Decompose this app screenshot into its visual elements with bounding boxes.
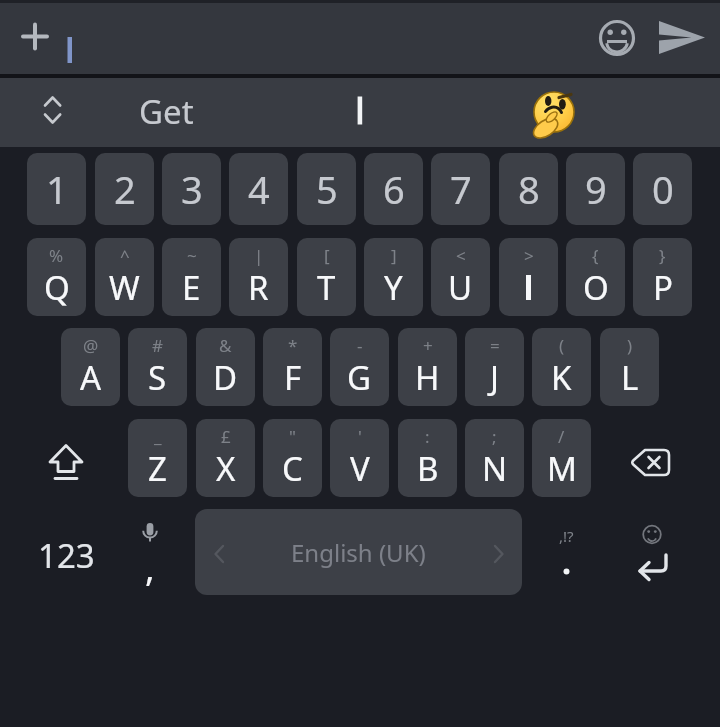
staticText: L xyxy=(621,355,639,400)
button[interactable]: Y xyxy=(364,238,423,316)
button[interactable]: , xyxy=(120,509,180,595)
button[interactable] xyxy=(28,88,78,138)
button[interactable]: G xyxy=(330,328,389,406)
button[interactable]: B xyxy=(398,419,457,497)
button[interactable]: 5 xyxy=(297,153,356,225)
staticText: F xyxy=(284,355,302,400)
button[interactable]: 3 xyxy=(162,153,221,225)
staticText: 3 xyxy=(181,163,203,215)
button[interactable]: Get xyxy=(91,80,241,143)
button[interactable] xyxy=(12,13,58,59)
staticText: O xyxy=(583,265,609,310)
button[interactable]: D xyxy=(196,328,255,406)
staticText: E xyxy=(182,265,201,310)
button[interactable]: W xyxy=(95,238,154,316)
staticText: ; xyxy=(492,425,497,448)
staticText: R xyxy=(248,265,269,310)
staticText: W xyxy=(109,265,140,310)
button[interactable] xyxy=(285,81,435,144)
button[interactable]: A xyxy=(61,328,120,406)
staticText: 1 xyxy=(46,163,68,215)
button[interactable]: 9 xyxy=(566,153,625,225)
staticText: | xyxy=(254,244,264,267)
button[interactable]: J xyxy=(465,328,524,406)
button[interactable]: M xyxy=(532,419,591,497)
button[interactable]: P xyxy=(633,238,692,316)
button[interactable]: ,!? xyxy=(536,509,596,595)
staticText: 2 xyxy=(114,163,136,215)
button[interactable]: 2 xyxy=(95,153,154,225)
button[interactable]: Z xyxy=(128,419,187,497)
staticText: * xyxy=(288,334,298,357)
button[interactable] xyxy=(656,15,708,61)
staticText: J xyxy=(490,355,500,400)
staticText: _ xyxy=(154,425,162,448)
button[interactable]: T xyxy=(297,238,356,316)
staticText: C xyxy=(282,446,303,491)
staticText: 8 xyxy=(518,163,540,215)
button[interactable]: S xyxy=(128,328,187,406)
staticText: ) xyxy=(627,334,633,357)
button[interactable]: L xyxy=(600,328,659,406)
staticText: A xyxy=(80,355,102,400)
staticText: 7 xyxy=(450,163,472,215)
staticText: Q xyxy=(44,265,70,310)
staticText: } xyxy=(659,244,666,267)
button[interactable] xyxy=(622,509,684,595)
button[interactable]: R xyxy=(229,238,288,316)
button[interactable]: V xyxy=(330,419,389,497)
staticText: & xyxy=(219,334,232,357)
button[interactable] xyxy=(594,15,640,61)
staticText: 0 xyxy=(652,163,674,215)
staticText: G xyxy=(347,355,372,400)
button[interactable]: N xyxy=(465,419,524,497)
staticText: @ xyxy=(83,334,99,357)
button[interactable] xyxy=(36,426,96,490)
button[interactable]: U xyxy=(431,238,490,316)
staticText: : xyxy=(425,425,430,448)
button[interactable]: 4 xyxy=(229,153,288,225)
staticText: M xyxy=(547,446,577,491)
button[interactable]: C xyxy=(263,419,322,497)
button[interactable]: F xyxy=(263,328,322,406)
button[interactable]: 6 xyxy=(364,153,423,225)
staticText: N xyxy=(482,446,508,491)
staticText: [ xyxy=(324,244,330,267)
staticText: U xyxy=(448,265,473,310)
button[interactable]: O xyxy=(566,238,625,316)
staticText: £ xyxy=(221,425,231,448)
staticText: Y xyxy=(384,265,403,310)
staticText: V xyxy=(350,446,370,491)
staticText: 5 xyxy=(316,163,338,215)
button[interactable]: 123 xyxy=(31,520,101,590)
staticText: H xyxy=(415,355,440,400)
button[interactable]: > xyxy=(499,238,558,316)
button[interactable] xyxy=(622,426,682,490)
staticText: ^ xyxy=(120,244,130,267)
button[interactable]: 1 xyxy=(27,153,86,225)
staticText: " xyxy=(289,425,296,448)
button[interactable]: 8 xyxy=(499,153,558,225)
staticText: P xyxy=(653,265,673,310)
button[interactable]: Q xyxy=(27,238,86,316)
button[interactable]: X xyxy=(196,419,255,497)
staticText: S xyxy=(148,355,167,400)
button[interactable]: E xyxy=(162,238,221,316)
staticText: ~ xyxy=(187,244,197,267)
staticText: T xyxy=(317,265,336,310)
button[interactable]: H xyxy=(398,328,457,406)
staticText: ( xyxy=(559,334,565,357)
button[interactable]: 0 xyxy=(633,153,692,225)
staticText: / xyxy=(558,425,565,448)
button[interactable]: English (UK) xyxy=(195,509,522,595)
staticText: ' xyxy=(358,425,362,448)
staticText: = xyxy=(490,334,500,357)
button[interactable]: 7 xyxy=(431,153,490,225)
staticText: English (UK) xyxy=(291,536,426,569)
button[interactable] xyxy=(525,85,581,141)
staticText: , xyxy=(145,543,155,592)
button[interactable]: K xyxy=(532,328,591,406)
staticText: 9 xyxy=(585,163,607,215)
staticText: ,!? xyxy=(559,526,574,546)
staticText: - xyxy=(357,334,363,357)
